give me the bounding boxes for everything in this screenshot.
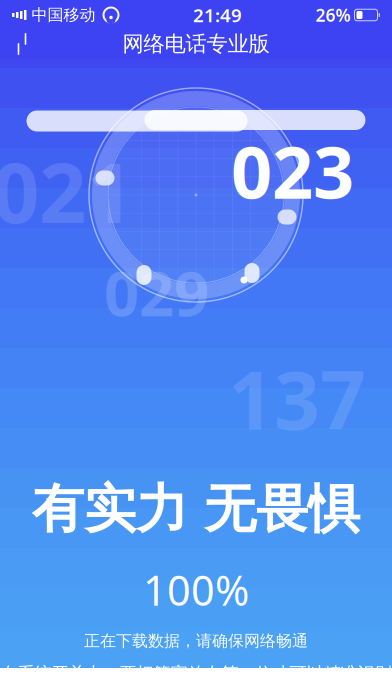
staticText: 在系统开关中，要把管家放在第一位才可以精准识别 [0, 663, 391, 684]
staticText: 26% [315, 3, 350, 26]
staticText: 023 [231, 123, 354, 219]
button[interactable]: 返回 [0, 26, 44, 62]
staticText: 100% [143, 562, 249, 617]
staticText: 021 [0, 136, 133, 246]
staticText: 21:49 [193, 3, 242, 27]
staticText: 有实力 无畏惧 [32, 477, 360, 541]
staticText: 137 [228, 345, 366, 451]
staticText: 正在下载数据，请确保网络畅通 [84, 631, 308, 651]
staticText: 029 [104, 252, 209, 333]
staticText: 网络电话专业版 [122, 31, 269, 57]
staticText: 中国移动 [31, 5, 95, 25]
